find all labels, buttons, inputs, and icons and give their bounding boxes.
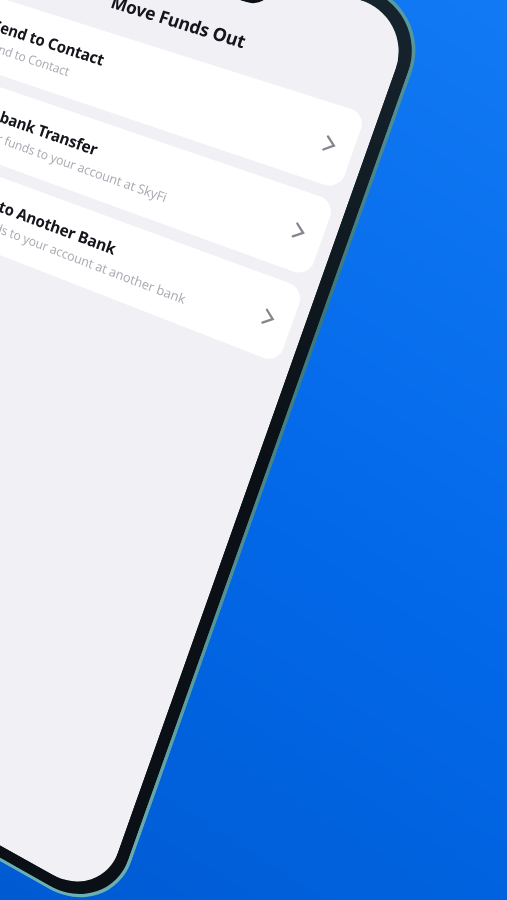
button[interactable]: Intrabank Transfer bbox=[0, 74, 335, 277]
staticText: Intrabank Transfer bbox=[0, 94, 101, 159]
other: Open Intrabank Transfer bbox=[290, 220, 308, 243]
button[interactable]: Send to Contact bbox=[0, 0, 367, 190]
staticText: Move Funds Out bbox=[108, 0, 250, 54]
staticText: Send to Contact bbox=[0, 37, 72, 80]
button[interactable]: Transfer to Another Bank bbox=[0, 153, 305, 364]
staticText: Send to Contact bbox=[0, 14, 108, 70]
other: Open Send to Contact bbox=[320, 132, 339, 156]
other: Open Transfer to Another Bank bbox=[260, 306, 278, 330]
staticText: Transfer funds to your account at anothe… bbox=[0, 195, 188, 308]
staticText: Transfer to Another Bank bbox=[0, 173, 119, 259]
staticText: Transfer funds to your account at SkyFi bbox=[0, 116, 170, 207]
